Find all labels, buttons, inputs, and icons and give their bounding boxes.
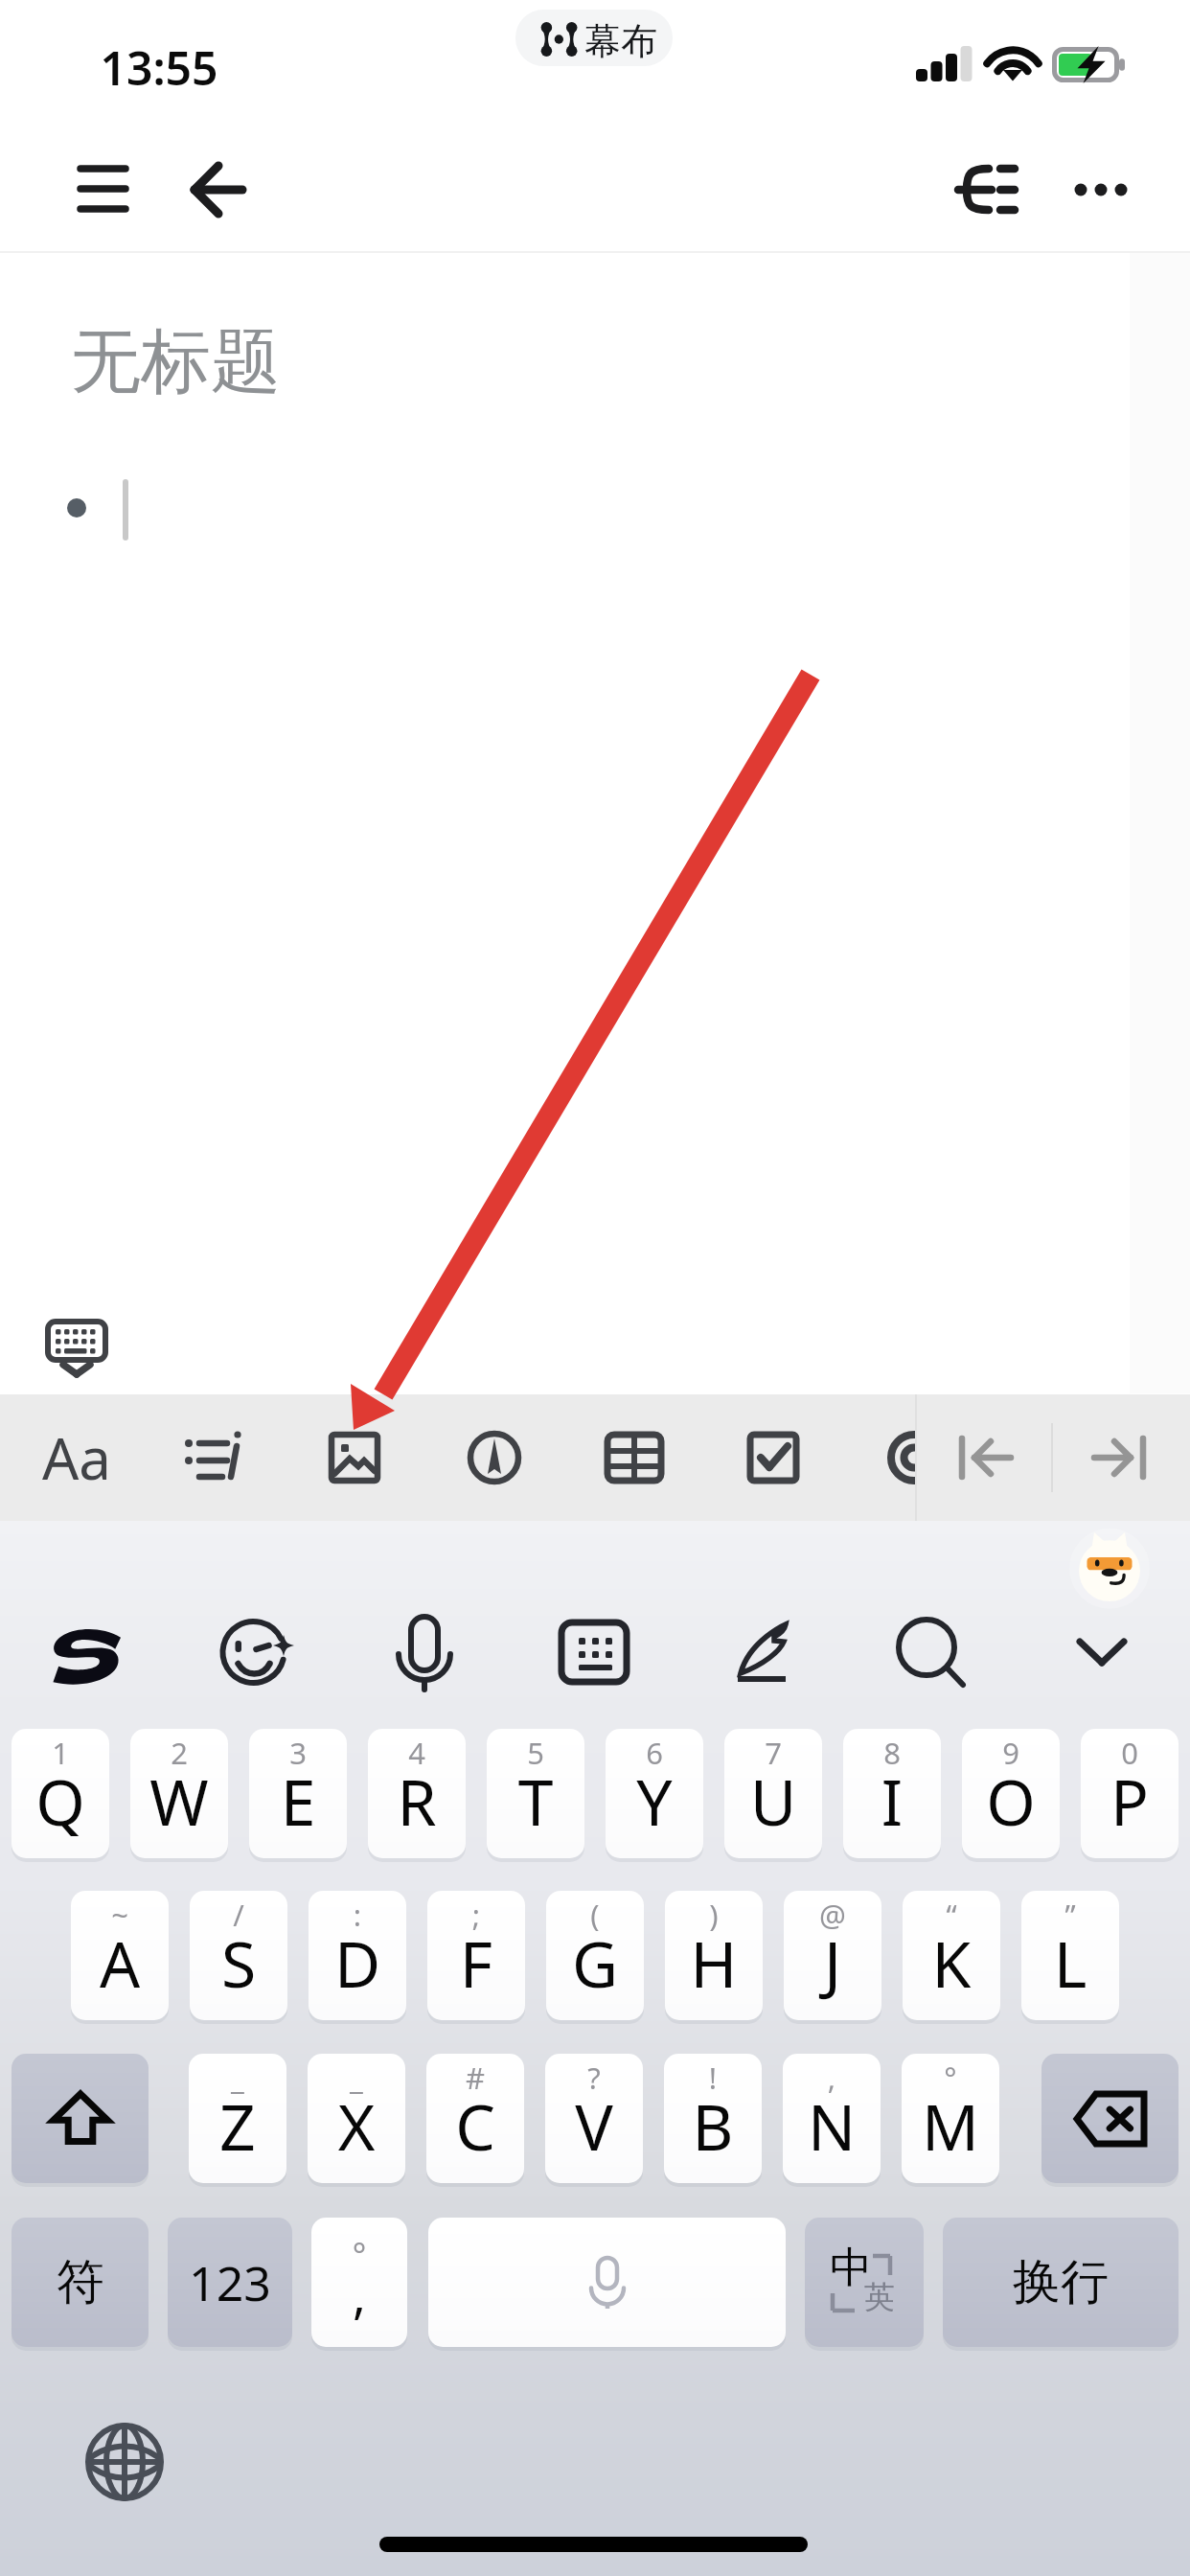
staticText: 无标题 bbox=[71, 318, 281, 406]
staticText: D bbox=[309, 1920, 406, 2006]
staticText: E bbox=[249, 1758, 347, 1844]
staticText: L bbox=[1021, 1920, 1119, 2006]
staticText: O bbox=[962, 1758, 1060, 1844]
staticText: K bbox=[903, 1920, 1000, 2006]
button[interactable]: Checkbox bbox=[725, 1410, 821, 1506]
button[interactable]: Text format bbox=[29, 1410, 125, 1506]
staticText: # bbox=[426, 2058, 524, 2098]
staticText: ° bbox=[311, 2233, 407, 2277]
button[interactable]: Menu bbox=[54, 145, 149, 231]
staticText: 幕布 bbox=[584, 18, 657, 64]
staticText: ° bbox=[902, 2058, 999, 2098]
button[interactable]: ~ bbox=[71, 1891, 169, 2020]
button[interactable]: ; bbox=[427, 1891, 525, 2020]
staticText: ? bbox=[545, 2058, 643, 2098]
button[interactable]: Draw bbox=[446, 1410, 542, 1506]
button[interactable]: 换行 bbox=[943, 2218, 1179, 2347]
button[interactable]: Outline view bbox=[939, 142, 1035, 238]
button[interactable]: Collapse keyboard bbox=[1059, 1609, 1145, 1695]
staticText: S bbox=[190, 1920, 287, 2006]
staticText: 13:55 bbox=[100, 36, 218, 99]
staticText: _ bbox=[189, 2058, 286, 2098]
staticText: X bbox=[308, 2082, 405, 2169]
button[interactable]: , bbox=[783, 2054, 881, 2183]
button[interactable]: Outdent bbox=[935, 1410, 1031, 1506]
button[interactable]: 2 bbox=[130, 1729, 228, 1858]
staticText: 2 bbox=[130, 1733, 228, 1773]
button[interactable]: 9 bbox=[962, 1729, 1060, 1858]
button[interactable]: Sogou input bbox=[42, 1612, 130, 1685]
button[interactable]: / bbox=[190, 1891, 287, 2020]
button[interactable]: 符 bbox=[11, 2218, 149, 2347]
button[interactable]: Indent bbox=[1073, 1410, 1169, 1506]
staticText: G bbox=[546, 1920, 644, 2006]
button[interactable] bbox=[11, 2054, 149, 2183]
button[interactable]: ) bbox=[665, 1891, 763, 2020]
staticText: _ bbox=[308, 2058, 405, 2098]
staticText: 1 bbox=[11, 1733, 109, 1773]
staticText: 9 bbox=[962, 1733, 1060, 1773]
button[interactable]: ? bbox=[545, 2054, 643, 2183]
staticText: Q bbox=[11, 1758, 109, 1844]
staticText: ” bbox=[1021, 1895, 1119, 1935]
button[interactable]: Insert image bbox=[307, 1410, 402, 1506]
button[interactable]: 123 bbox=[168, 2218, 292, 2347]
button[interactable] bbox=[1041, 2054, 1179, 2183]
button[interactable]: Handwriting bbox=[721, 1609, 807, 1695]
button[interactable]: @ bbox=[784, 1891, 881, 2020]
button[interactable]: Insert table bbox=[586, 1410, 682, 1506]
staticText: , bbox=[311, 2260, 407, 2328]
staticText: , bbox=[783, 2058, 881, 2098]
staticText: 6 bbox=[606, 1733, 703, 1773]
staticText: M bbox=[902, 2082, 999, 2169]
button[interactable]: 4 bbox=[368, 1729, 466, 1858]
staticText: ~ bbox=[71, 1895, 169, 1935]
button[interactable]: _ bbox=[189, 2054, 286, 2183]
button[interactable]: 8 bbox=[843, 1729, 941, 1858]
staticText: T bbox=[487, 1758, 584, 1844]
button[interactable]: ° bbox=[902, 2054, 999, 2183]
button[interactable]: ° bbox=[311, 2218, 407, 2347]
button[interactable]: Tag bbox=[866, 1394, 915, 1521]
button[interactable]: Keyboard layout bbox=[551, 1609, 637, 1695]
staticText: : bbox=[309, 1895, 406, 1935]
button[interactable]: 3 bbox=[249, 1729, 347, 1858]
button[interactable]: “ bbox=[903, 1891, 1000, 2020]
button[interactable]: 1 bbox=[11, 1729, 109, 1858]
button[interactable]: List style bbox=[168, 1410, 263, 1506]
button[interactable]: Hide keyboard bbox=[36, 1309, 117, 1390]
staticText: ( bbox=[546, 1895, 644, 1935]
button[interactable]: More options bbox=[1052, 142, 1148, 238]
button[interactable]: Back bbox=[170, 145, 265, 231]
staticText: 7 bbox=[724, 1733, 822, 1773]
staticText: A bbox=[71, 1920, 169, 2006]
staticText: / bbox=[190, 1895, 287, 1935]
staticText: Y bbox=[606, 1758, 703, 1844]
staticText: ; bbox=[427, 1895, 525, 1935]
staticText: U bbox=[724, 1758, 822, 1844]
button[interactable]: 5 bbox=[487, 1729, 584, 1858]
button[interactable]: _ bbox=[308, 2054, 405, 2183]
button[interactable]: ” bbox=[1021, 1891, 1119, 2020]
staticText: 123 bbox=[189, 2250, 271, 2315]
button[interactable] bbox=[428, 2218, 786, 2347]
button[interactable]: ( bbox=[546, 1891, 644, 2020]
button[interactable]: ! bbox=[664, 2054, 762, 2183]
staticText: 换行 bbox=[1013, 2252, 1109, 2312]
button[interactable]: 0 bbox=[1081, 1729, 1179, 1858]
button[interactable]: # bbox=[426, 2054, 524, 2183]
staticText: Z bbox=[189, 2082, 286, 2169]
button[interactable]: 7 bbox=[724, 1729, 822, 1858]
staticText: 0 bbox=[1081, 1733, 1179, 1773]
staticText: 4 bbox=[368, 1733, 466, 1773]
button[interactable]: : bbox=[309, 1891, 406, 2020]
staticText: H bbox=[665, 1920, 763, 2006]
button[interactable]: Switch language bbox=[84, 2422, 165, 2502]
button[interactable]: Voice input bbox=[381, 1609, 468, 1695]
staticText: Aa bbox=[42, 1418, 111, 1497]
button[interactable]: Emoji bbox=[207, 1609, 293, 1695]
staticText: 3 bbox=[249, 1733, 347, 1773]
button[interactable]: Search bbox=[888, 1609, 974, 1695]
button[interactable]: 6 bbox=[606, 1729, 703, 1858]
button[interactable]: 中 bbox=[805, 2218, 924, 2347]
